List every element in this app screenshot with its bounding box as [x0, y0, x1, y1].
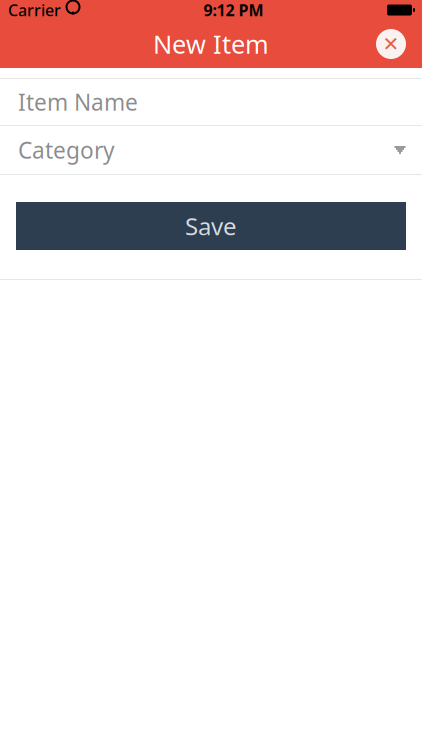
staticText: New Item — [153, 27, 269, 61]
staticText: 9:12 PM — [203, 0, 263, 21]
staticText: Item Name — [18, 87, 138, 117]
button[interactable]: Category — [0, 126, 422, 174]
button[interactable]: Item Name — [0, 79, 422, 125]
button[interactable]: Close — [369, 22, 413, 66]
staticText: Carrier — [8, 0, 61, 21]
staticText: ✕ — [382, 33, 399, 55]
staticText: Category — [18, 135, 115, 165]
staticText: Save — [185, 210, 237, 242]
button[interactable]: Save — [16, 202, 406, 250]
